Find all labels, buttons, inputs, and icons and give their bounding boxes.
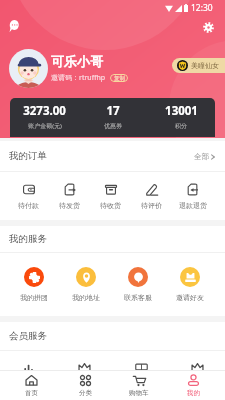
button[interactable]: 邀请好友 <box>164 267 215 302</box>
staticText: 全部 <box>194 152 209 161</box>
staticText: 待付款 <box>18 201 39 210</box>
button[interactable]: Settings <box>198 17 219 38</box>
button[interactable]: Coupon <box>118 361 164 383</box>
button[interactable]: 我的拼团 <box>8 267 60 302</box>
button[interactable]: 我的 <box>166 371 220 400</box>
staticText: 我的地址 <box>72 293 100 302</box>
button[interactable]: 待收货 <box>90 183 131 210</box>
staticText: 邀请好友 <box>176 293 204 302</box>
staticText: 待评价 <box>141 201 162 210</box>
button[interactable]: 复制 <box>110 74 128 82</box>
staticText: 首页 <box>25 389 38 397</box>
button[interactable]: 17 <box>79 98 147 135</box>
staticText: 会员服务 <box>9 330 47 342</box>
staticText: 分类 <box>79 389 92 397</box>
button[interactable]: 联系客服 <box>112 267 164 302</box>
staticText: 退款退货 <box>179 201 207 210</box>
button[interactable]: 待发货 <box>49 183 90 210</box>
staticText: 复制 <box>114 75 125 82</box>
button[interactable]: 13001 <box>147 98 215 135</box>
staticText: 美瞳仙女 <box>191 61 219 70</box>
button[interactable]: 退款退货 <box>172 183 213 210</box>
staticText: 我的 <box>187 389 200 397</box>
staticText: 3273.00 <box>23 103 66 119</box>
staticText: 我的服务 <box>9 233 47 245</box>
staticText: 邀请码：rtruffhp <box>51 73 106 83</box>
staticText: 17 <box>106 103 120 119</box>
staticText: 账户金额(元) <box>28 122 62 130</box>
staticText: 购物车 <box>129 389 149 397</box>
button[interactable]: Messages <box>4 15 25 36</box>
staticText: 12:30 <box>191 2 213 14</box>
button[interactable]: 待付款 <box>8 183 49 210</box>
button[interactable]: 我的地址 <box>60 267 112 302</box>
staticText: 可乐小哥 <box>51 53 103 69</box>
button[interactable]: Statistics <box>5 361 51 383</box>
button[interactable]: 3273.00 <box>10 98 79 135</box>
button[interactable]: 美瞳仙女 <box>172 58 225 73</box>
staticText: 优惠券 <box>104 122 122 130</box>
button[interactable]: 购物车 <box>112 371 166 400</box>
staticText: 待发货 <box>59 201 80 210</box>
button[interactable]: Profile avatar <box>9 49 48 88</box>
staticText: 我的拼团 <box>20 293 48 302</box>
staticText: 我的订单 <box>9 150 47 162</box>
staticText: 待收货 <box>100 201 121 210</box>
button[interactable]: 首页 <box>4 371 58 400</box>
staticText: 积分 <box>175 122 187 130</box>
button[interactable]: 全部 <box>194 150 215 163</box>
staticText: 13001 <box>165 103 198 119</box>
staticText: 联系客服 <box>124 293 152 302</box>
button[interactable]: 待评价 <box>131 183 172 210</box>
button[interactable]: 分类 <box>58 371 112 400</box>
button[interactable]: Crown <box>61 361 107 383</box>
button[interactable]: Level <box>174 361 220 383</box>
